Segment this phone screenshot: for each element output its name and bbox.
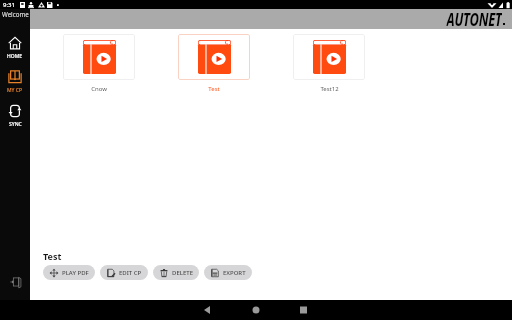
button[interactable] (293, 34, 365, 80)
button[interactable]: PLAY PDF (43, 265, 95, 280)
staticText: SYNC (9, 121, 22, 128)
staticText: Welcome (2, 10, 29, 18)
staticText: Test12 (320, 85, 339, 93)
staticText: MY CP (7, 87, 23, 94)
button[interactable]: SYNC (0, 104, 30, 138)
staticText: EXPORT (223, 269, 246, 277)
button[interactable]: DELETE (153, 265, 199, 280)
button[interactable]: EXPORT (204, 265, 252, 280)
staticText: HOME (7, 53, 23, 60)
staticText: EDIT CP (119, 269, 142, 277)
button[interactable]: Logout (0, 267, 30, 297)
button[interactable] (178, 34, 250, 80)
button[interactable] (63, 34, 135, 80)
staticText: Test (208, 85, 220, 93)
button[interactable]: EDIT CP (100, 265, 148, 280)
button[interactable]: MY CP (0, 70, 30, 104)
staticText: DELETE (172, 269, 193, 277)
staticText: Test (43, 250, 62, 262)
staticText: PLAY PDF (62, 269, 89, 277)
staticText: 9:31 (3, 1, 15, 9)
button[interactable]: HOME (0, 36, 30, 70)
staticText: AUTONET (446, 8, 502, 28)
staticText: Cnow (91, 85, 107, 93)
